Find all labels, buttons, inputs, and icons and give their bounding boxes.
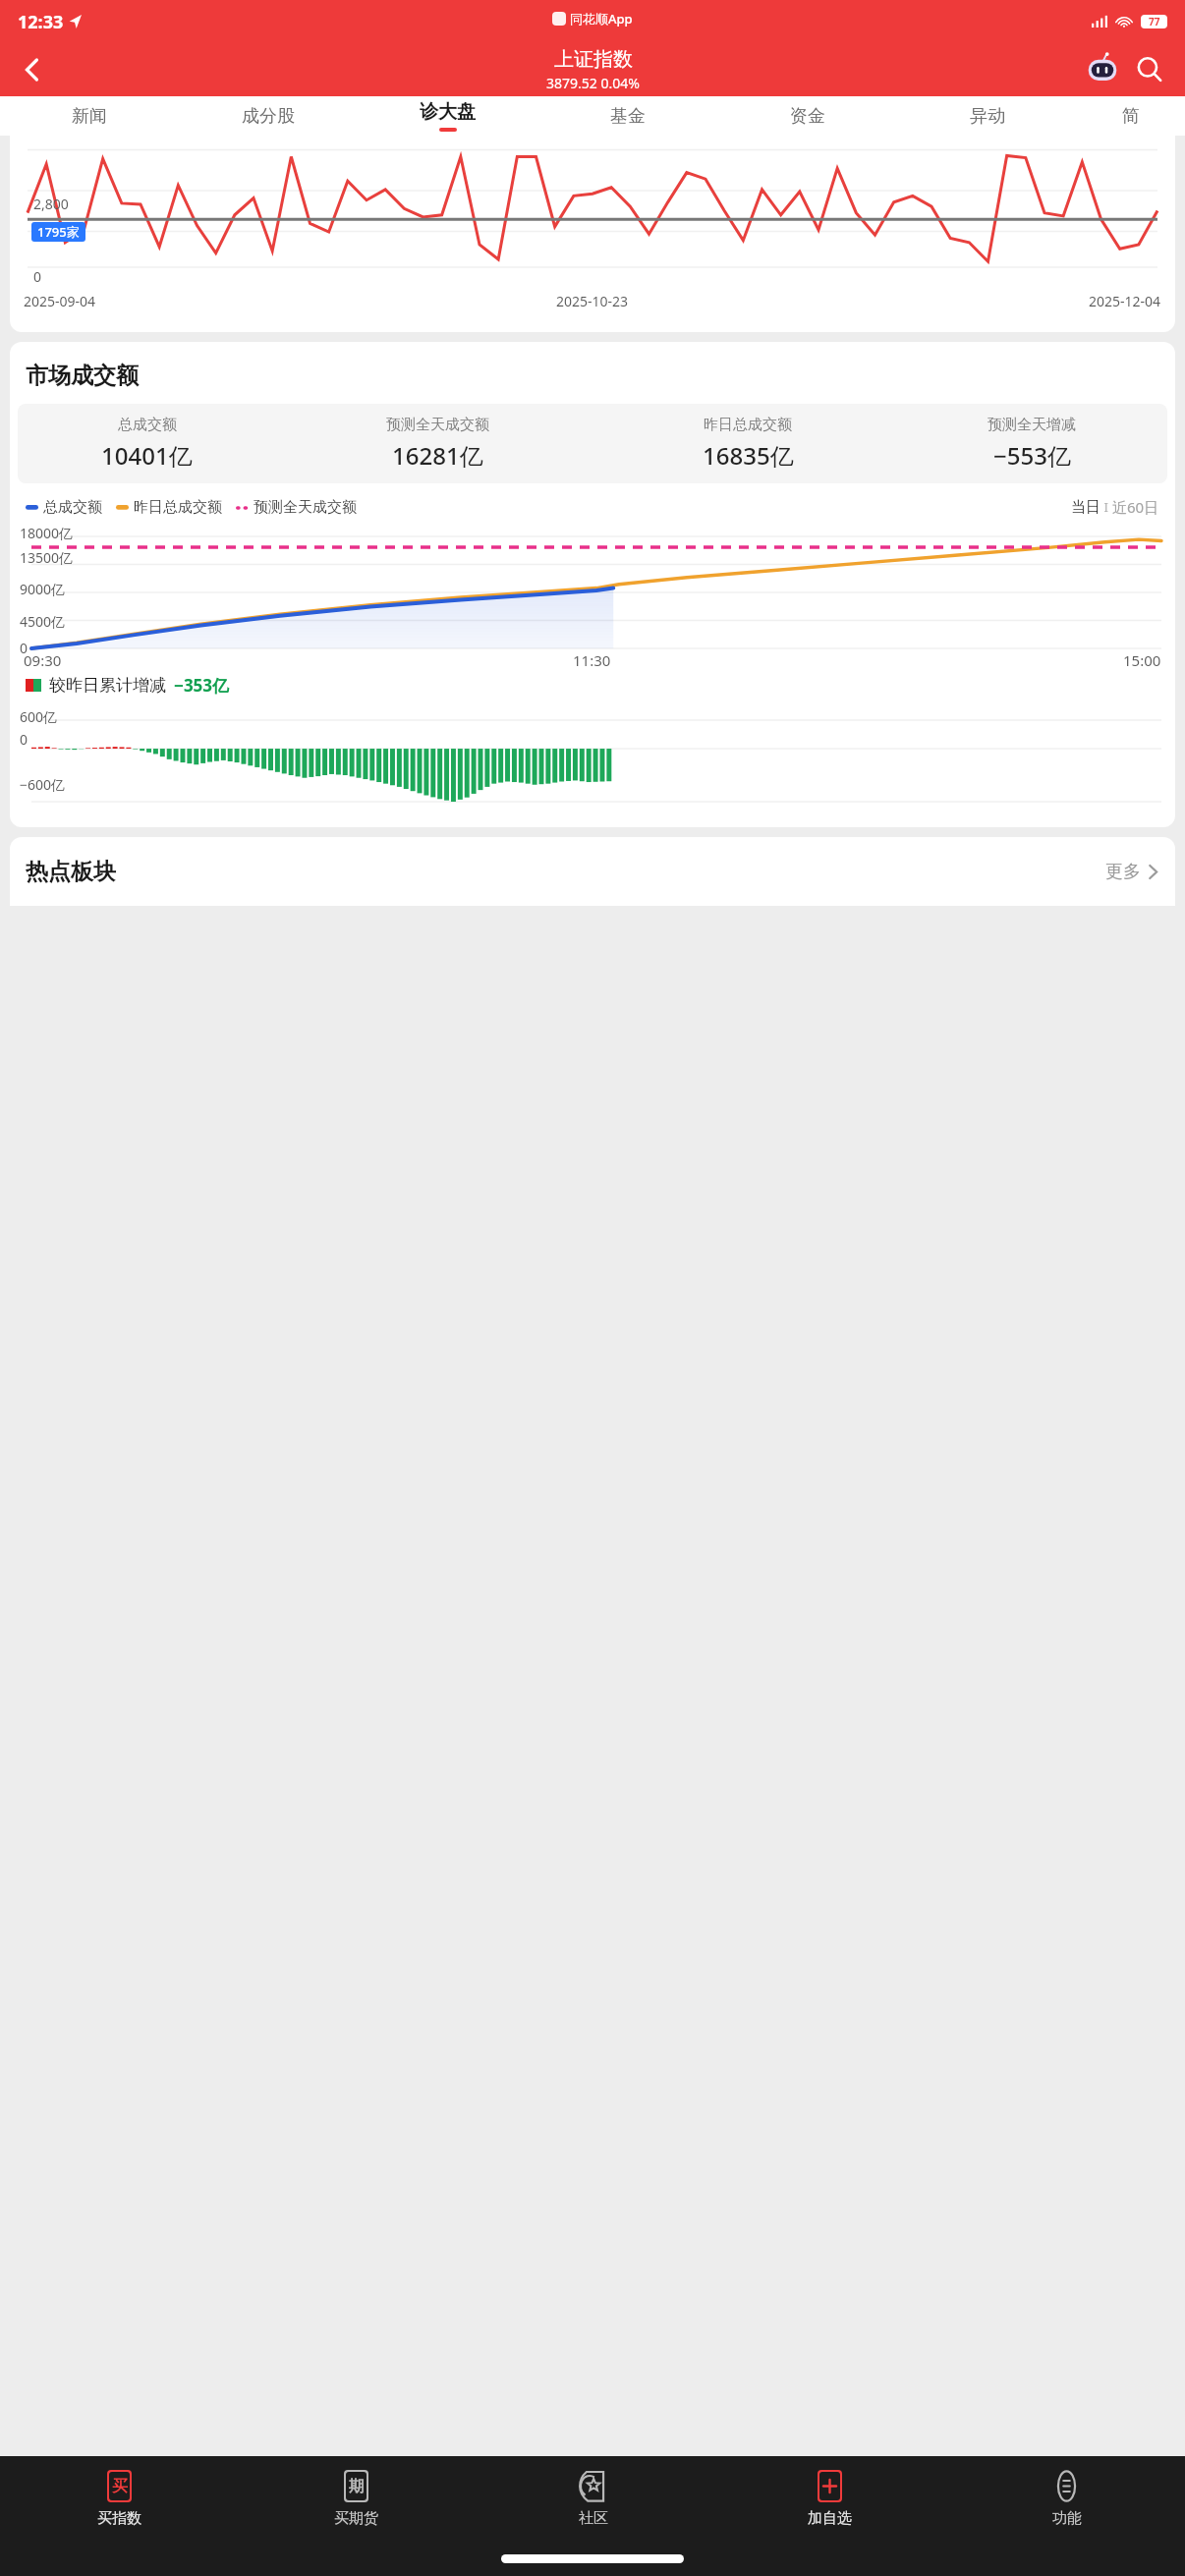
staticText: 1795家 <box>37 223 80 241</box>
staticText: 较昨日累计增减 <box>49 675 166 696</box>
staticText: 预测全天增减 <box>987 416 1076 434</box>
staticText: 3879.52 0.04% <box>546 74 640 92</box>
button[interactable]: 2,800 <box>10 136 1175 332</box>
staticText: 昨日总成交额 <box>704 416 792 434</box>
staticText: 昨日总成交额 <box>134 498 222 517</box>
button[interactable]: 社区 <box>475 2468 711 2530</box>
staticText: 0 <box>33 267 42 286</box>
staticText: −353亿 <box>174 674 230 697</box>
staticText: 热点板块 <box>26 858 116 886</box>
staticText: 16835亿 <box>703 439 794 472</box>
staticText: 13500亿 <box>20 548 74 567</box>
staticText: 18000亿 <box>20 524 74 542</box>
staticText: 0 <box>20 730 28 749</box>
button[interactable]: 当日 <box>1071 497 1159 517</box>
staticText: 总成交额 <box>118 416 177 434</box>
staticText: 买指数 <box>97 2509 141 2528</box>
button[interactable]: 诊大盘 <box>358 96 537 136</box>
staticText: 总成交额 <box>43 498 102 517</box>
button[interactable]: Back <box>6 43 59 96</box>
staticText: 简 <box>1122 105 1140 128</box>
staticText: 市场成交额 <box>26 362 139 390</box>
staticText: 2025-10-23 <box>556 292 629 310</box>
button[interactable]: 功能 <box>948 2468 1185 2530</box>
staticText: 异动 <box>970 105 1005 128</box>
staticText: 买期货 <box>334 2509 378 2528</box>
staticText: 2025-12-04 <box>1089 292 1161 310</box>
staticText: 诊大盘 <box>420 100 476 124</box>
button[interactable]: 基金 <box>537 96 717 136</box>
button[interactable]: 更多 <box>1105 861 1159 883</box>
button[interactable]: 买 <box>0 2468 238 2530</box>
staticText: 当日 <box>1071 498 1100 517</box>
staticText: 近60日 <box>1112 497 1159 517</box>
staticText: 上证指数 <box>554 47 633 72</box>
staticText: 同花顺App <box>570 10 633 28</box>
staticText: 9000亿 <box>20 580 66 598</box>
staticText: 加自选 <box>808 2509 852 2528</box>
staticText: 功能 <box>1052 2509 1082 2528</box>
staticText: 买 <box>112 2477 128 2496</box>
button[interactable]: 加自选 <box>711 2468 948 2530</box>
staticText: 基金 <box>610 105 646 128</box>
staticText: 2025-09-04 <box>24 292 96 310</box>
staticText: 77 <box>1149 15 1160 28</box>
button[interactable]: 成分股 <box>179 96 358 136</box>
staticText: 预测全天成交额 <box>386 416 489 434</box>
staticText: 15:00 <box>1123 650 1161 670</box>
button[interactable]: Search <box>1128 48 1171 91</box>
staticText: 0 <box>20 639 28 657</box>
staticText: 12:33 <box>18 10 64 34</box>
staticText: 资金 <box>790 105 825 128</box>
staticText: −600亿 <box>20 775 66 794</box>
button[interactable]: AI assistant <box>1081 48 1124 91</box>
button[interactable]: 新闻 <box>0 96 179 136</box>
staticText: 10401亿 <box>101 439 193 472</box>
staticText: 社区 <box>579 2509 608 2528</box>
staticText: −553亿 <box>993 439 1071 472</box>
button[interactable]: 资金 <box>717 96 897 136</box>
staticText: 期 <box>349 2477 365 2496</box>
button[interactable]: 期 <box>238 2468 475 2530</box>
staticText: I <box>1100 498 1112 516</box>
staticText: 16281亿 <box>392 439 483 472</box>
button[interactable]: 简 <box>1077 96 1185 136</box>
staticText: 11:30 <box>573 650 611 670</box>
button[interactable]: 异动 <box>897 96 1077 136</box>
staticText: 新闻 <box>72 105 107 128</box>
staticText: 2,800 <box>33 195 69 213</box>
staticText: 09:30 <box>24 650 62 670</box>
staticText: 预测全天成交额 <box>254 498 357 517</box>
staticText: 4500亿 <box>20 612 66 631</box>
staticText: 更多 <box>1105 861 1141 883</box>
staticText: 成分股 <box>242 105 295 128</box>
staticText: 600亿 <box>20 707 58 726</box>
